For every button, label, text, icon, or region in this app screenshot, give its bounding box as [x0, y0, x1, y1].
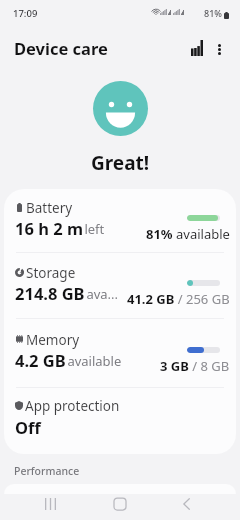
button[interactable]: Recents	[30, 491, 71, 517]
staticText: Battery	[26, 199, 73, 217]
button[interactable]: Home	[100, 491, 140, 517]
staticText: Device care	[14, 37, 108, 59]
staticText: Storage	[26, 264, 76, 282]
button[interactable]: Usage statistics	[184, 35, 210, 61]
button[interactable]: Back	[166, 491, 207, 517]
staticText: Great!	[91, 150, 150, 176]
staticText: 81% available	[146, 225, 230, 243]
button[interactable]: Memory	[4, 319, 236, 387]
staticText: 41.2 GB / 256 GB	[127, 290, 230, 308]
staticText: Off	[15, 416, 41, 438]
staticText: 17:09	[13, 7, 38, 20]
button[interactable]: App protection	[4, 388, 236, 454]
staticText: 214.8 GB	[15, 282, 85, 304]
staticText: App protection	[25, 397, 120, 415]
staticText: left	[81, 220, 105, 238]
staticText: 81%	[204, 7, 222, 19]
button[interactable]: Battery	[4, 189, 236, 252]
staticText: 3 GB / 8 GB	[160, 357, 230, 375]
staticText: ava...	[83, 285, 119, 303]
staticText: Memory	[26, 331, 80, 349]
staticText: available	[64, 352, 122, 370]
button[interactable]: Storage	[4, 253, 236, 318]
staticText: Performance	[14, 464, 80, 478]
button[interactable]: More options	[206, 35, 232, 61]
staticText: 4.2 GB	[15, 349, 66, 371]
staticText: 16 h 2 m	[15, 217, 83, 239]
